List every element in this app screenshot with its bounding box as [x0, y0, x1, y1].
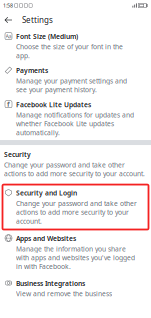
staticText: Payments	[16, 66, 48, 75]
staticText: Apps and Websites	[16, 234, 76, 243]
staticText: Security	[4, 150, 31, 159]
button[interactable]: f	[0, 97, 151, 140]
staticText: Manage the information you share with ap…	[16, 244, 135, 271]
staticText: Aa	[5, 33, 11, 40]
button[interactable]: Apps and Websites	[0, 230, 151, 275]
button[interactable]: Back	[1, 12, 16, 27]
staticText: Security and Login	[16, 189, 77, 197]
staticText: f	[7, 100, 10, 109]
staticText: Facebook Lite Updates	[16, 100, 91, 109]
staticText: Settings	[22, 15, 53, 25]
staticText: Font Size (Medium)	[16, 32, 78, 41]
staticText: Manage notifications for updates and whe…	[16, 110, 134, 137]
staticText: View and remove the business	[16, 289, 112, 298]
staticText: 1:58	[3, 2, 13, 9]
button[interactable]: Security and Login	[0, 184, 151, 230]
staticText: Business Integrations	[16, 279, 85, 288]
staticText: Change your password and take other acti…	[4, 160, 145, 178]
button[interactable]: Aa	[0, 29, 151, 63]
staticText: Change your password and take other acti…	[16, 199, 137, 225]
button[interactable]: Business Integrations	[0, 275, 151, 302]
staticText: Manage your payment settings and see you…	[16, 76, 127, 94]
button[interactable]: Payments	[0, 63, 151, 97]
staticText: Choose the size of your font in the app.	[16, 42, 123, 60]
